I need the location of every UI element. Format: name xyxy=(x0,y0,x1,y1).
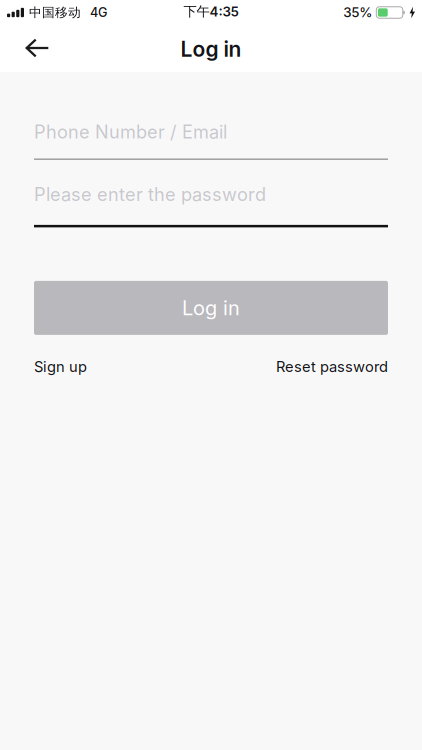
button[interactable]: Log in xyxy=(34,281,388,335)
button[interactable]: Reset password xyxy=(276,358,388,376)
staticText: Phone Number / Email xyxy=(34,121,227,143)
staticText: 中国移动 xyxy=(29,4,81,20)
staticText: Reset password xyxy=(276,358,388,376)
staticText: Log in xyxy=(180,36,241,62)
staticText: Log in xyxy=(182,296,240,320)
staticText: 下午4:35 xyxy=(183,3,238,20)
staticText: 4G xyxy=(90,5,107,20)
staticText: 35% xyxy=(343,4,372,20)
button[interactable]: Back xyxy=(0,26,63,68)
button[interactable]: Sign up xyxy=(34,358,87,376)
staticText: Sign up xyxy=(34,358,87,376)
staticText: Please enter the password xyxy=(34,183,266,205)
